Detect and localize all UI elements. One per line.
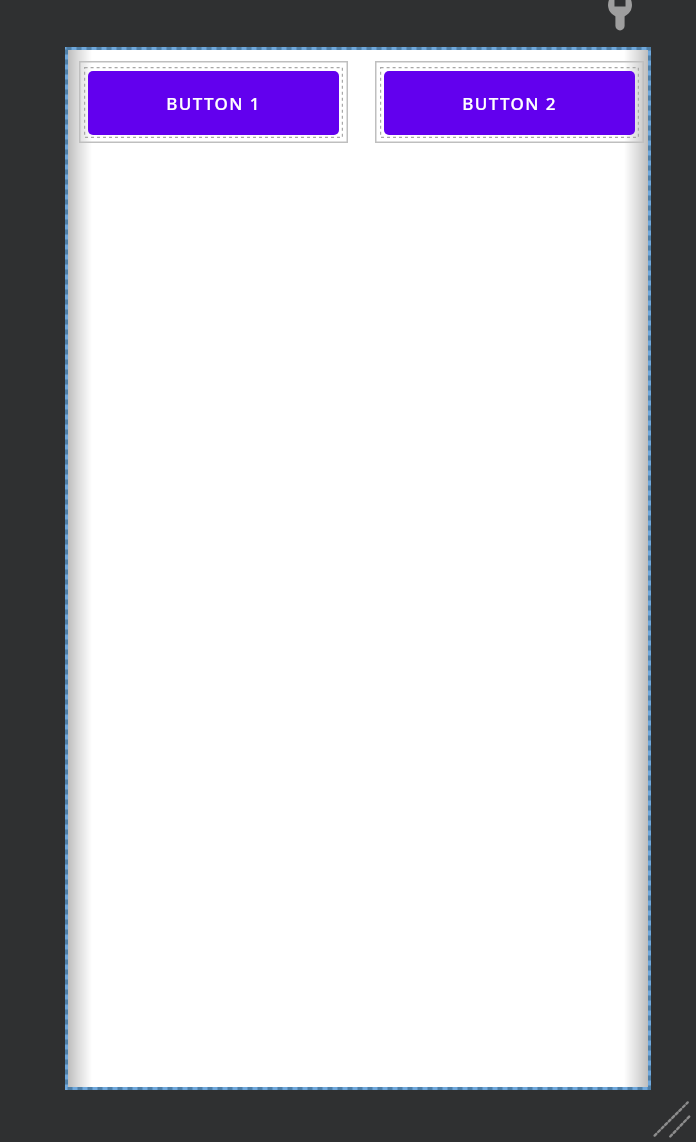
staticText: BUTTON 1 [166, 92, 261, 115]
button[interactable]: Design tools [600, 0, 640, 40]
button[interactable]: BUTTON 1 [79, 61, 348, 143]
button[interactable]: Resize [650, 1096, 696, 1142]
button[interactable]: BUTTON 2 [375, 61, 644, 143]
staticText: BUTTON 2 [462, 92, 557, 115]
